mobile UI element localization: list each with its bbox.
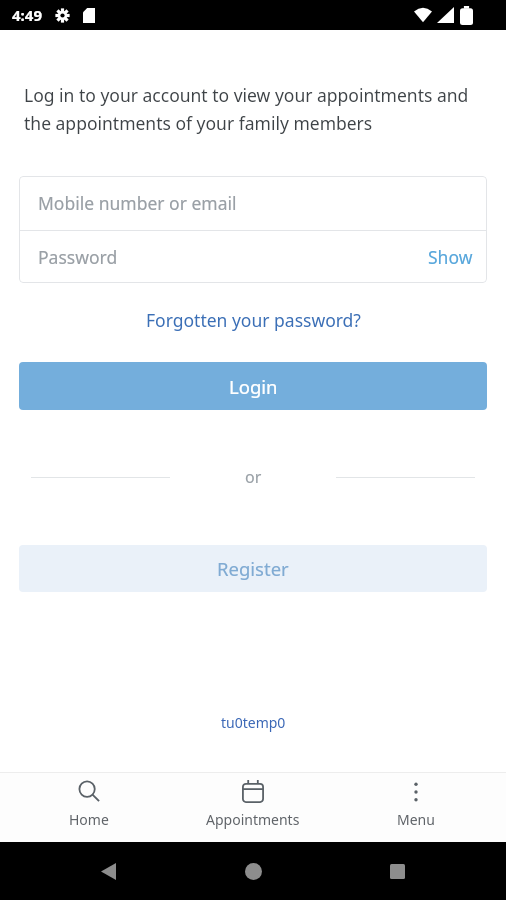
button[interactable]: Forgotten your password?	[146, 308, 361, 332]
button[interactable]	[101, 863, 116, 880]
button[interactable]: Register	[19, 545, 487, 592]
button[interactable]	[245, 863, 262, 880]
button[interactable]: Password	[19, 231, 487, 283]
button[interactable]: Mobile number or email	[19, 176, 487, 230]
staticText: Mobile number or email	[38, 191, 237, 215]
button[interactable]: Show	[428, 245, 473, 269]
staticText: or	[245, 466, 262, 488]
staticText: Register	[217, 556, 289, 581]
staticText: Password	[38, 245, 118, 269]
staticText: Home	[69, 810, 109, 829]
staticText: 4:49	[12, 5, 42, 25]
staticText: Log in to your account to view your appo…	[24, 83, 469, 135]
staticText: Appointments	[206, 810, 300, 829]
button[interactable]: Login	[19, 362, 487, 410]
button[interactable]: Menu	[331, 773, 500, 842]
button[interactable]: Appointments	[168, 773, 337, 842]
button[interactable]: Home	[5, 773, 173, 842]
button[interactable]: tu0temp0	[221, 713, 286, 732]
staticText: Menu	[397, 810, 435, 829]
staticText: Login	[229, 374, 278, 399]
button[interactable]	[390, 864, 405, 879]
